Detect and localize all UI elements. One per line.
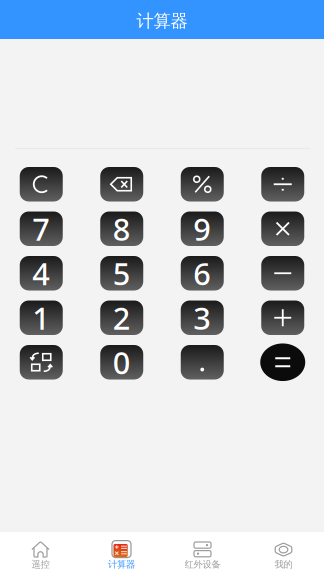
staticText: 6 — [193, 253, 211, 294]
button[interactable]: 1 — [20, 300, 63, 335]
staticText: 5 — [113, 253, 131, 294]
staticText: 8 — [113, 208, 131, 249]
button[interactable]: Backspace — [100, 167, 143, 201]
button[interactable]: 3 — [181, 300, 224, 335]
button[interactable]: 5 — [100, 256, 143, 290]
staticText: 2 — [113, 297, 131, 338]
staticText: 7 — [32, 208, 50, 249]
button[interactable]: 7 — [20, 211, 63, 246]
button[interactable]: Unit convert — [20, 345, 63, 379]
button[interactable]: 我的 — [243, 541, 324, 570]
button[interactable]: Plus — [261, 300, 304, 335]
staticText: 0 — [113, 342, 131, 383]
staticText: 计算器 — [108, 559, 135, 570]
button[interactable]: Divide — [261, 167, 304, 201]
staticText: 计算器 — [136, 10, 187, 32]
button[interactable]: 4 — [20, 256, 63, 290]
button[interactable]: Minus — [261, 256, 304, 290]
button[interactable]: Clear — [20, 167, 63, 201]
button[interactable]: 计算器 — [81, 541, 162, 570]
button[interactable]: 0 — [100, 345, 143, 379]
button[interactable]: Multiply — [261, 211, 304, 246]
staticText: 9 — [193, 208, 211, 249]
staticText: 1 — [32, 297, 50, 338]
staticText: 红外设备 — [184, 559, 220, 570]
staticText: 3 — [193, 297, 211, 338]
button[interactable]: 2 — [100, 300, 143, 335]
staticText: 4 — [32, 253, 50, 294]
button[interactable]: Decimal point — [181, 345, 224, 379]
button[interactable]: 红外设备 — [162, 541, 243, 570]
button[interactable]: 9 — [181, 211, 224, 246]
staticText: 我的 — [274, 559, 292, 570]
staticText: 遥控 — [31, 559, 49, 570]
button[interactable]: Equals — [261, 345, 304, 379]
button[interactable]: 6 — [181, 256, 224, 290]
button[interactable]: 8 — [100, 211, 143, 246]
button[interactable]: Percent — [181, 167, 224, 201]
button[interactable]: 遥控 — [0, 541, 81, 570]
